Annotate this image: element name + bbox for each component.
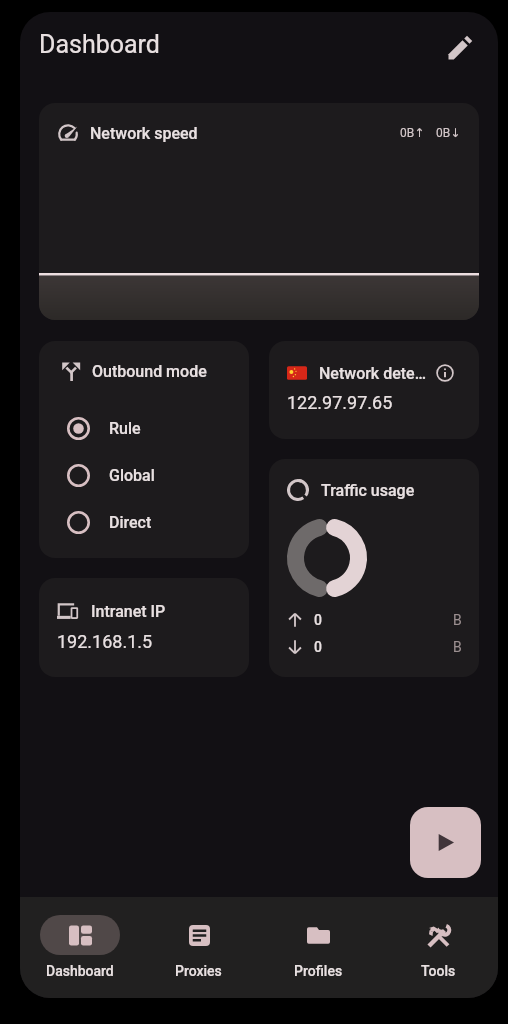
button[interactable]: Rule (61, 405, 237, 452)
staticText: Dashboard (39, 30, 160, 59)
staticText: 0B↓ (436, 126, 461, 140)
button[interactable]: Traffic usage (269, 459, 479, 677)
staticText: 0B↑ (400, 126, 425, 140)
button[interactable]: Direct (61, 499, 237, 546)
button[interactable]: Dashboard (20, 897, 139, 998)
staticText: Rule (109, 419, 141, 438)
staticText: Profiles (294, 963, 343, 979)
button[interactable]: Intranet IP (39, 578, 249, 677)
staticText: Network dete… (319, 364, 426, 383)
staticText: 192.168.1.5 (57, 631, 153, 652)
staticText: Outbound mode (92, 362, 207, 381)
button[interactable]: Network dete… (269, 341, 479, 439)
button[interactable]: Proxies (139, 897, 258, 998)
button[interactable]: Tools (378, 897, 498, 998)
staticText: B (453, 639, 462, 655)
staticText: 122.97.97.65 (287, 392, 393, 413)
button[interactable]: Start VPN (410, 807, 481, 878)
staticText: Dashboard (46, 963, 114, 979)
button[interactable]: Outbound mode (39, 341, 249, 558)
staticText: Direct (109, 513, 152, 532)
button[interactable]: Global (61, 452, 237, 499)
staticText: Network speed (90, 124, 198, 143)
staticText: 0 (314, 612, 322, 628)
staticText: Tools (421, 963, 456, 979)
button[interactable]: Edit (436, 22, 480, 66)
staticText: 0 (314, 639, 322, 655)
staticText: B (453, 612, 462, 628)
button[interactable]: Network speed (39, 103, 479, 320)
staticText: Global (109, 466, 155, 485)
staticText: Traffic usage (321, 481, 415, 500)
staticText: Intranet IP (91, 602, 166, 621)
button[interactable]: Profiles (258, 897, 378, 998)
staticText: Proxies (175, 963, 222, 979)
